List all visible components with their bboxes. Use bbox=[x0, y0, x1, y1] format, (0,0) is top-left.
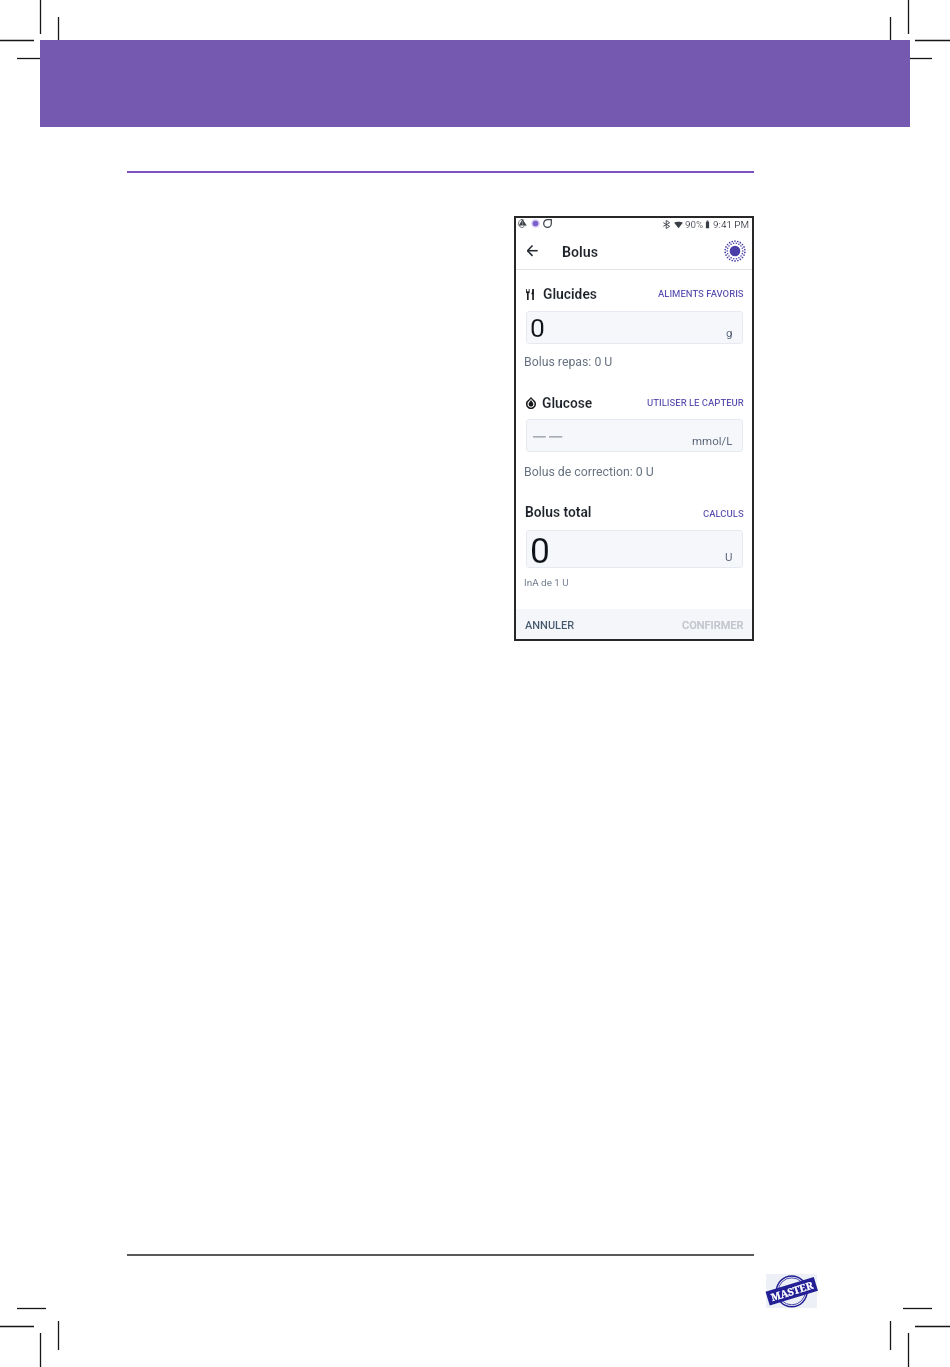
staticText: ANNULER bbox=[525, 619, 575, 632]
button[interactable]: 0 bbox=[526, 311, 743, 344]
staticText: U bbox=[725, 550, 733, 563]
staticText: InA de 1 U bbox=[524, 577, 569, 589]
button[interactable]: Device status bbox=[723, 239, 747, 263]
staticText: MASTER bbox=[769, 1278, 815, 1304]
staticText: ALIMENTS FAVORIS bbox=[658, 288, 744, 299]
staticText: g bbox=[726, 326, 733, 339]
button[interactable]: ANNULER bbox=[525, 619, 575, 632]
staticText: Bolus repas: 0 U bbox=[524, 355, 613, 369]
staticText: mmol/L bbox=[692, 434, 733, 447]
button[interactable]: UTILISER LE CAPTEUR bbox=[647, 397, 744, 408]
staticText: 0 bbox=[530, 530, 550, 568]
staticText: 90% bbox=[685, 219, 704, 230]
staticText: 9:41 PM bbox=[713, 219, 750, 230]
button[interactable]: Back bbox=[521, 239, 543, 261]
staticText: CALCULS bbox=[703, 508, 744, 519]
staticText: Bolus bbox=[562, 244, 599, 261]
button[interactable]: CONFIRMER bbox=[682, 619, 744, 632]
staticText: CONFIRMER bbox=[682, 619, 744, 632]
button[interactable]: ALIMENTS FAVORIS bbox=[658, 288, 744, 299]
button[interactable]: 0 bbox=[526, 530, 743, 568]
button[interactable]: mmol/L bbox=[526, 419, 743, 452]
staticText: Bolus total bbox=[525, 504, 592, 520]
staticText: Glucose bbox=[542, 395, 593, 411]
staticText: UTILISER LE CAPTEUR bbox=[647, 397, 744, 408]
staticText: Bolus de correction: 0 U bbox=[524, 465, 654, 479]
staticText: Glucides bbox=[543, 286, 597, 302]
staticText: 0 bbox=[530, 312, 545, 343]
button[interactable]: CALCULS bbox=[703, 508, 744, 519]
